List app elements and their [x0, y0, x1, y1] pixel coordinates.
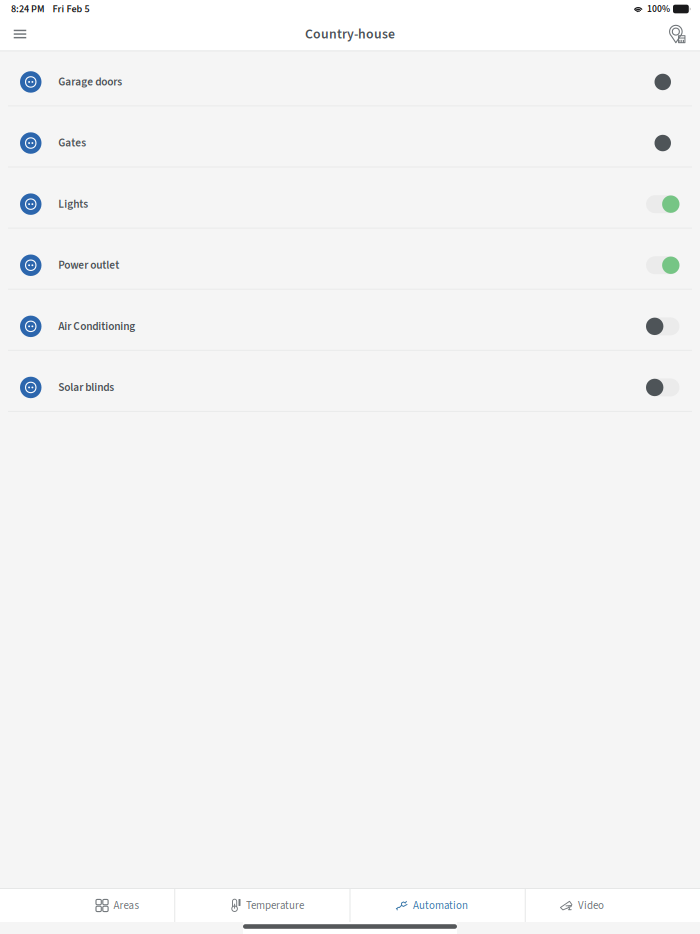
button[interactable]: Power outlet	[0, 235, 700, 296]
staticText: Fri Feb 5	[52, 2, 89, 16]
staticText: 8:24 PM	[11, 2, 45, 16]
button[interactable]: Lights	[0, 174, 700, 235]
staticText: Garage doors	[58, 74, 122, 90]
staticText: Air Conditioning	[58, 318, 135, 334]
staticText: Power outlet	[58, 257, 119, 273]
staticText: 100%	[647, 2, 670, 16]
button[interactable]: Air Conditioning	[0, 296, 700, 357]
staticText: Automation	[413, 898, 468, 913]
staticText: Areas	[114, 898, 140, 913]
staticText: Solar blinds	[58, 379, 114, 395]
button[interactable]: Garage doors	[0, 51, 700, 112]
button[interactable]: Video	[560, 889, 604, 922]
staticText: Lights	[58, 196, 88, 212]
button[interactable]: Solar blinds	[0, 357, 700, 418]
button[interactable]: Gates	[0, 112, 700, 174]
button[interactable]: Areas	[96, 889, 140, 922]
button[interactable]: Menu	[3, 18, 37, 51]
staticText: Gates	[58, 135, 86, 151]
button[interactable]: Automation	[396, 889, 468, 922]
staticText: Country-house	[305, 24, 395, 44]
staticText: Temperature	[246, 898, 304, 913]
button[interactable]: Temperature	[232, 889, 304, 922]
staticText: Video	[578, 898, 604, 913]
button[interactable]: Location	[660, 18, 694, 51]
